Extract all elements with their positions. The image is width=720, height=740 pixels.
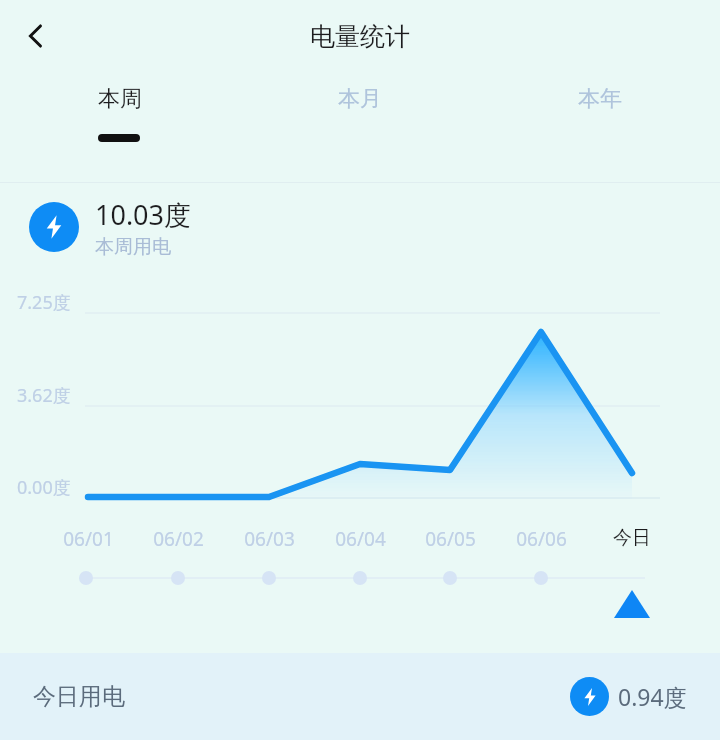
staticText: 06/05 bbox=[425, 526, 476, 552]
staticText: 3.62度 bbox=[17, 383, 71, 408]
staticText: 06/06 bbox=[516, 526, 567, 552]
button[interactable]: 今日用电 bbox=[0, 653, 720, 740]
staticText: 7.25度 bbox=[17, 290, 71, 315]
staticText: 06/02 bbox=[153, 526, 204, 552]
staticText: 06/01 bbox=[63, 526, 114, 552]
staticText: 电量统计 bbox=[310, 21, 410, 52]
staticText: 06/03 bbox=[244, 526, 295, 552]
staticText: 06/04 bbox=[335, 526, 386, 552]
staticText: 本周用电 bbox=[95, 235, 171, 259]
staticText: 今日 bbox=[613, 526, 651, 550]
staticText: 本月 bbox=[338, 85, 382, 113]
staticText: 0.94度 bbox=[618, 681, 687, 712]
staticText: 今日用电 bbox=[33, 682, 125, 711]
button[interactable]: 本年 bbox=[480, 72, 720, 183]
staticText: 0.00度 bbox=[17, 475, 71, 500]
staticText: 本周 bbox=[98, 85, 142, 113]
button[interactable]: Back bbox=[8, 8, 64, 64]
button[interactable]: 本周 bbox=[0, 72, 240, 183]
staticText: 本年 bbox=[578, 85, 622, 113]
button[interactable]: 本月 bbox=[240, 72, 480, 183]
staticText: 10.03度 bbox=[95, 196, 192, 233]
